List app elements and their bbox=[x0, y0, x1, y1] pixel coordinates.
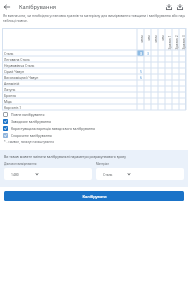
button[interactable] bbox=[165, 104, 172, 110]
staticText: 3 bbox=[147, 51, 149, 56]
button[interactable] bbox=[179, 86, 186, 92]
button[interactable] bbox=[179, 50, 186, 56]
button[interactable] bbox=[172, 80, 179, 86]
button[interactable] bbox=[158, 104, 165, 110]
button[interactable] bbox=[179, 92, 186, 98]
button[interactable] bbox=[137, 92, 144, 98]
button[interactable] bbox=[158, 92, 165, 98]
button[interactable] bbox=[151, 74, 158, 80]
button[interactable] bbox=[137, 98, 144, 104]
button[interactable] bbox=[144, 56, 151, 62]
button[interactable]: 3 bbox=[137, 50, 144, 56]
button[interactable] bbox=[151, 92, 158, 98]
button[interactable] bbox=[165, 62, 172, 68]
staticText: Ви також можете змінити калібрувальні па… bbox=[4, 154, 127, 159]
button[interactable] bbox=[179, 104, 186, 110]
button[interactable] bbox=[165, 92, 172, 98]
button[interactable] bbox=[151, 62, 158, 68]
button[interactable] bbox=[165, 98, 172, 104]
button[interactable] bbox=[144, 92, 151, 98]
button[interactable] bbox=[158, 50, 165, 56]
button[interactable] bbox=[158, 74, 165, 80]
button[interactable] bbox=[165, 80, 172, 86]
button[interactable]: Нержавіюча Сталь bbox=[2, 62, 137, 68]
button[interactable] bbox=[165, 68, 172, 74]
staticText: мм bbox=[145, 34, 150, 40]
button[interactable] bbox=[151, 98, 158, 104]
button[interactable] bbox=[172, 62, 179, 68]
button[interactable] bbox=[144, 80, 151, 86]
button[interactable] bbox=[144, 104, 151, 110]
button[interactable] bbox=[158, 56, 165, 62]
button[interactable] bbox=[179, 62, 186, 68]
button[interactable]: 3 bbox=[144, 50, 151, 56]
button[interactable] bbox=[144, 74, 151, 80]
button[interactable] bbox=[137, 62, 144, 68]
button[interactable] bbox=[151, 50, 158, 56]
button[interactable] bbox=[137, 104, 144, 110]
button[interactable] bbox=[179, 74, 186, 80]
staticText: Легована Сталь bbox=[4, 57, 30, 62]
button[interactable] bbox=[179, 80, 186, 86]
button[interactable] bbox=[151, 86, 158, 92]
button[interactable] bbox=[172, 50, 179, 56]
button[interactable]: Корсоніт-1 bbox=[2, 104, 137, 110]
button[interactable] bbox=[158, 62, 165, 68]
button[interactable] bbox=[165, 50, 172, 56]
button[interactable]: Download bbox=[164, 2, 174, 12]
button[interactable] bbox=[165, 56, 172, 62]
button[interactable] bbox=[172, 104, 179, 110]
button[interactable] bbox=[158, 80, 165, 86]
button[interactable] bbox=[172, 68, 179, 74]
staticText: Корсоніт-1 bbox=[4, 105, 22, 110]
button[interactable]: 6 bbox=[137, 74, 144, 80]
button[interactable] bbox=[179, 56, 186, 62]
button[interactable] bbox=[172, 92, 179, 98]
button[interactable] bbox=[137, 86, 144, 92]
button[interactable] bbox=[165, 74, 172, 80]
button[interactable] bbox=[179, 98, 186, 104]
staticText: Заводське калібрування bbox=[11, 119, 51, 124]
button[interactable]: 1480 bbox=[4, 168, 92, 180]
button[interactable]: Сталь bbox=[2, 50, 137, 56]
button[interactable] bbox=[144, 98, 151, 104]
button[interactable]: Скорочене калібрування bbox=[3, 132, 188, 139]
button[interactable] bbox=[172, 74, 179, 80]
button[interactable] bbox=[144, 86, 151, 92]
button[interactable]: Save bbox=[175, 2, 185, 12]
button[interactable] bbox=[144, 68, 151, 74]
button[interactable]: Бронза bbox=[2, 92, 137, 98]
button[interactable] bbox=[158, 86, 165, 92]
button[interactable] bbox=[172, 98, 179, 104]
button[interactable] bbox=[158, 98, 165, 104]
button[interactable] bbox=[151, 56, 158, 62]
button[interactable]: Заводське калібрування bbox=[3, 118, 188, 125]
button[interactable] bbox=[151, 104, 158, 110]
button[interactable] bbox=[158, 68, 165, 74]
staticText: 6 bbox=[140, 75, 142, 80]
button[interactable] bbox=[151, 68, 158, 74]
staticText: Зразок 2 bbox=[173, 34, 178, 49]
button[interactable]: Сталь bbox=[96, 168, 184, 180]
staticText: Високоміцний Чавун bbox=[4, 75, 39, 80]
button[interactable] bbox=[137, 80, 144, 86]
button[interactable]: Високоміцний Чавун bbox=[2, 74, 137, 80]
button[interactable]: Мідь bbox=[2, 98, 137, 104]
button[interactable] bbox=[179, 68, 186, 74]
button[interactable]: Back bbox=[0, 0, 14, 14]
button[interactable] bbox=[151, 80, 158, 86]
button[interactable] bbox=[165, 86, 172, 92]
button[interactable] bbox=[172, 86, 179, 92]
button[interactable]: Латунь bbox=[2, 86, 137, 92]
button[interactable]: Легована Сталь bbox=[2, 56, 137, 62]
button[interactable]: Алюміній bbox=[2, 80, 137, 86]
button[interactable]: Повне калібрування bbox=[3, 111, 188, 118]
button[interactable] bbox=[144, 62, 151, 68]
staticText: Сталь bbox=[103, 172, 113, 177]
button[interactable] bbox=[172, 56, 179, 62]
button[interactable]: Сірий Чавун bbox=[2, 68, 137, 74]
button[interactable]: Калібрувати bbox=[4, 191, 184, 201]
button[interactable] bbox=[137, 56, 144, 62]
button[interactable]: Користувацька корекція заводського каліб… bbox=[3, 125, 188, 132]
button[interactable]: 5 bbox=[137, 68, 144, 74]
